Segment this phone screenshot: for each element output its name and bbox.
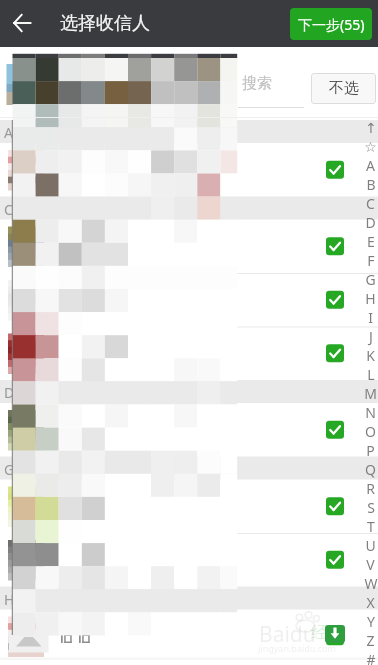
staticText: S xyxy=(367,498,375,517)
staticText: C xyxy=(4,200,12,217)
button[interactable]: P xyxy=(363,441,378,460)
button[interactable]: N xyxy=(363,403,378,422)
button[interactable]: R xyxy=(363,479,378,498)
staticText: 选择收信人 xyxy=(60,12,150,35)
button[interactable]: W xyxy=(363,574,378,593)
staticText: H xyxy=(365,289,376,308)
staticText: Z xyxy=(366,631,375,650)
button[interactable]: M xyxy=(363,384,378,403)
staticText: O xyxy=(365,422,376,441)
staticText: F xyxy=(367,251,375,270)
staticText: K xyxy=(366,346,375,365)
button[interactable]: T xyxy=(363,517,378,536)
button[interactable]: # xyxy=(363,650,378,665)
button[interactable]: V xyxy=(363,555,378,574)
button[interactable]: 下一步(55) xyxy=(290,8,372,40)
button[interactable]: Y xyxy=(363,612,378,631)
button[interactable]: B xyxy=(363,175,378,194)
staticText: D xyxy=(4,383,12,400)
button[interactable]: D xyxy=(363,213,378,232)
staticText: T xyxy=(367,517,375,536)
button[interactable]: Z xyxy=(363,631,378,650)
button[interactable]: Back xyxy=(0,2,44,46)
staticText: A xyxy=(366,156,375,175)
staticText: C xyxy=(366,194,375,213)
button[interactable]: G xyxy=(363,270,378,289)
staticText: P xyxy=(366,441,375,460)
button[interactable]: F xyxy=(363,251,378,270)
staticText: X xyxy=(366,593,375,612)
staticText: L xyxy=(367,365,375,384)
staticText: Baidu xyxy=(259,620,316,649)
staticText: N xyxy=(365,403,376,422)
staticText: B xyxy=(366,175,376,194)
staticText: # xyxy=(366,650,376,665)
button[interactable]: U xyxy=(363,536,378,555)
staticText: 搜索 xyxy=(242,74,272,93)
button[interactable]: J xyxy=(363,327,378,346)
staticText: V xyxy=(366,555,375,574)
staticText: ☆ xyxy=(364,139,377,155)
button[interactable]: X xyxy=(363,593,378,612)
staticText: R xyxy=(366,479,375,498)
button[interactable]: E xyxy=(363,232,378,251)
staticText: jingyan.baidu.com xyxy=(258,642,336,654)
staticText: W xyxy=(364,574,378,593)
button[interactable]: I xyxy=(363,308,378,327)
staticText: G xyxy=(4,460,12,477)
staticText: A xyxy=(4,123,12,140)
button[interactable]: ↑ xyxy=(363,118,378,137)
staticText: E xyxy=(367,232,375,251)
button[interactable]: H xyxy=(363,289,378,308)
button[interactable]: 不选 xyxy=(311,73,376,104)
button[interactable]: L xyxy=(363,365,378,384)
button[interactable]: K xyxy=(363,346,378,365)
staticText: D xyxy=(365,213,376,232)
staticText: M xyxy=(364,384,377,403)
button[interactable]: ☆ xyxy=(363,137,378,156)
button[interactable]: A xyxy=(363,156,378,175)
staticText: ↑ xyxy=(365,120,377,136)
staticText: Q xyxy=(365,460,376,479)
staticText: I xyxy=(368,308,373,327)
button[interactable]: S xyxy=(363,498,378,517)
staticText: 下一步(55) xyxy=(298,15,365,34)
staticText: U xyxy=(365,536,376,555)
staticText: H xyxy=(4,590,12,607)
button[interactable]: 搜索 xyxy=(242,74,300,98)
button[interactable]: Q xyxy=(363,460,378,479)
button[interactable]: O xyxy=(363,422,378,441)
staticText: 经验 xyxy=(311,622,345,643)
staticText: 不选 xyxy=(329,79,359,98)
staticText: G xyxy=(365,270,376,289)
staticText: Y xyxy=(367,612,375,631)
staticText: J xyxy=(369,327,373,346)
button[interactable]: C xyxy=(363,194,378,213)
